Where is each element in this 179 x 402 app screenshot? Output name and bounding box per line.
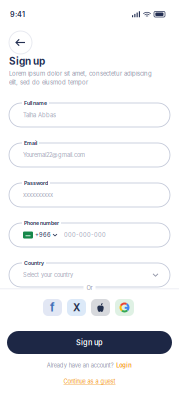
staticText: Lorem ipsum dolor sit amet, consectetur … [9,70,152,77]
staticText: Email [24,140,37,146]
button[interactable]: Youremai22@gmail.com [9,143,170,167]
button[interactable]: Sign up with Google [115,299,134,316]
staticText: Youremai22@gmail.com [23,151,85,158]
staticText: Talha Abbas [23,111,56,119]
staticText: Already have an account? [47,362,114,369]
staticText: Select your country [23,271,73,278]
button[interactable]: Sign up [7,331,172,354]
button[interactable]: xxxxxxxxxx [9,183,170,207]
staticText: Login [116,362,132,369]
button[interactable]: Login [116,362,132,369]
staticText: Continue as a guest [63,378,115,385]
staticText: Country [24,260,44,266]
staticText: Sign up [9,55,45,67]
button[interactable]: Continue as a guest [0,378,179,385]
button[interactable]: Sign up with X [67,299,86,316]
staticText: X [73,301,80,314]
button[interactable]: Talha Abbas [9,103,170,127]
staticText: 9:41 [10,10,25,19]
staticText: Or [86,284,92,291]
staticText: Sign up [76,338,103,347]
button[interactable]: +966 [9,223,170,247]
staticText: 000-000-000 [64,231,106,238]
staticText: +966 [35,231,51,238]
staticText: elit, sed do eiusmod tempor [9,79,88,86]
button[interactable]: Sign up with Facebook [43,299,62,316]
staticText: Phone number [24,220,59,226]
button[interactable]: Back [9,31,32,54]
button[interactable]: Sign up with Apple [91,299,110,316]
staticText: xxxxxxxxxx [23,191,53,198]
staticText: f [50,301,55,314]
staticText: Password [24,180,48,186]
staticText: Full name [24,100,47,106]
button[interactable]: Select your country [9,263,170,287]
